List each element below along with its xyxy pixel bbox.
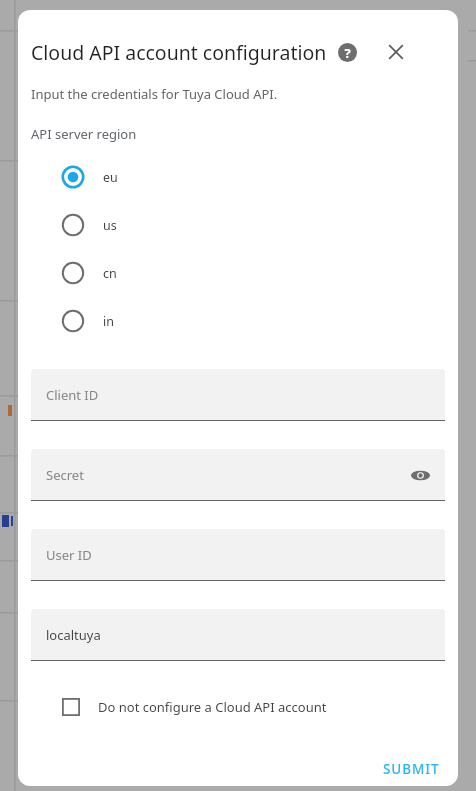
staticText: API server region: [31, 125, 137, 143]
button[interactable]: Help: [333, 38, 361, 66]
button[interactable]: localtuya: [31, 609, 445, 661]
button[interactable]: in: [18, 297, 458, 345]
button[interactable]: Do not configure a Cloud API account: [18, 690, 458, 724]
button[interactable]: us: [18, 201, 458, 249]
staticText: us: [103, 217, 117, 234]
staticText: Input the credentials for Tuya Cloud API…: [31, 85, 278, 103]
staticText: Cloud API account configuration: [31, 39, 327, 66]
button[interactable]: Secret: [31, 449, 445, 501]
staticText: localtuya: [46, 626, 101, 644]
button[interactable]: Client ID: [31, 369, 445, 421]
button[interactable]: eu: [18, 153, 458, 201]
button[interactable]: SUBMIT: [375, 754, 448, 784]
staticText: Secret: [46, 466, 84, 484]
staticText: eu: [103, 169, 118, 186]
button[interactable]: User ID: [31, 529, 445, 581]
staticText: Client ID: [46, 386, 99, 404]
staticText: Do not configure a Cloud API account: [98, 698, 327, 716]
staticText: SUBMIT: [383, 760, 440, 778]
staticText: ?: [344, 44, 351, 62]
button[interactable]: Show password: [403, 458, 437, 492]
staticText: in: [103, 313, 114, 330]
staticText: User ID: [46, 546, 92, 564]
button[interactable]: Close: [379, 35, 413, 69]
button[interactable]: cn: [18, 249, 458, 297]
staticText: cn: [103, 265, 117, 282]
